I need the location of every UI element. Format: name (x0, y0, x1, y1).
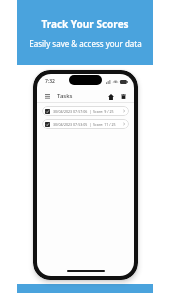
button[interactable]: 30/04/2023 07:57:06 | Score: 9 / 25 (42, 106, 129, 116)
button[interactable]: 30/04/2023 07:53:05 | Score: 11 / 25 (42, 119, 129, 129)
button[interactable]: Menu (43, 92, 51, 100)
staticText: Track Your Scores (41, 17, 129, 31)
staticText: Easily save & access your data (29, 38, 142, 49)
staticText: 30/04/2023 07:53:05 | Score: 11 / 25 (53, 122, 122, 127)
staticText: 7:32 (45, 78, 55, 85)
staticText: 30/04/2023 07:57:06 | Score: 9 / 25 (53, 109, 122, 114)
button[interactable]: Home (106, 92, 115, 101)
staticText: Tasks (57, 92, 73, 100)
button[interactable]: Delete (119, 92, 128, 101)
